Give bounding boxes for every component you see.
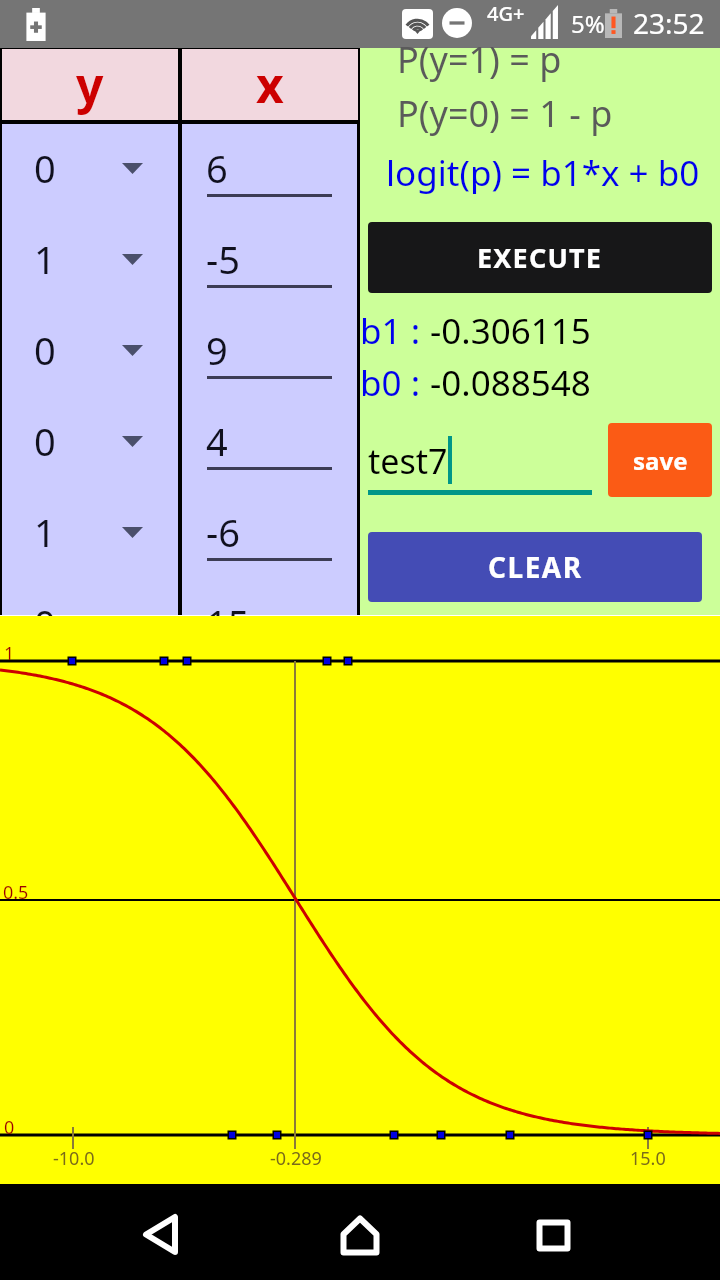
staticText: 15	[206, 597, 250, 649]
staticText: 23:52	[633, 4, 705, 42]
staticText: 9	[206, 324, 228, 376]
staticText: test7	[368, 438, 448, 484]
button[interactable]: x	[182, 49, 358, 120]
staticText: -10.0	[53, 1146, 95, 1171]
staticText: EXECUTE	[477, 239, 603, 276]
staticText: 5%	[571, 7, 605, 40]
button[interactable]: 0	[2, 579, 177, 670]
staticText: x	[256, 52, 284, 117]
button[interactable]: save	[608, 423, 712, 497]
staticText: -0.306115	[430, 307, 591, 355]
button[interactable]: 1	[2, 488, 177, 579]
staticText: 0	[34, 597, 56, 649]
button[interactable]: 1	[2, 215, 177, 306]
staticText: b0 :	[360, 359, 430, 407]
staticText: -6	[206, 506, 240, 558]
button[interactable]: 0	[2, 306, 177, 397]
button[interactable]: y	[2, 49, 178, 120]
staticText: CLEAR	[488, 548, 583, 586]
button[interactable]: -6	[182, 488, 357, 579]
staticText: 4	[206, 415, 228, 467]
staticText: y	[76, 52, 104, 117]
staticText: 1	[4, 641, 15, 666]
staticText: 6	[206, 142, 228, 194]
staticText: 1	[34, 233, 56, 285]
button[interactable]: 0	[2, 124, 177, 215]
button[interactable]: 6	[182, 124, 357, 215]
staticText: -5	[206, 233, 240, 285]
staticText: P(y=1) = p	[397, 35, 562, 84]
staticText: -0.088548	[430, 359, 591, 407]
button[interactable]: 9	[182, 306, 357, 397]
button[interactable]: 0	[2, 397, 177, 488]
staticText: 15.0	[630, 1146, 666, 1171]
button[interactable]: Recent apps	[492, 1184, 612, 1280]
staticText: 0	[34, 415, 56, 467]
button[interactable]: EXECUTE	[368, 222, 712, 293]
button[interactable]: 4	[182, 397, 357, 488]
staticText: save	[633, 444, 688, 477]
staticText: 0	[34, 324, 56, 376]
staticText: -0.289	[270, 1146, 322, 1171]
staticText: P(y=0) = 1 - p	[397, 89, 613, 138]
staticText: logit(p) = b1*x + b0	[386, 149, 700, 197]
staticText: 0	[4, 1115, 15, 1140]
button[interactable]: Home	[300, 1184, 420, 1280]
button[interactable]: -5	[182, 215, 357, 306]
button[interactable]: 15	[182, 579, 357, 670]
button[interactable]: CLEAR	[368, 532, 702, 602]
staticText: 0	[34, 142, 56, 194]
staticText: 0.5	[3, 880, 29, 905]
staticText: 4G+	[487, 0, 525, 27]
button[interactable]: Back	[100, 1184, 220, 1280]
staticText: b1 :	[360, 307, 430, 355]
staticText: 1	[34, 506, 56, 558]
